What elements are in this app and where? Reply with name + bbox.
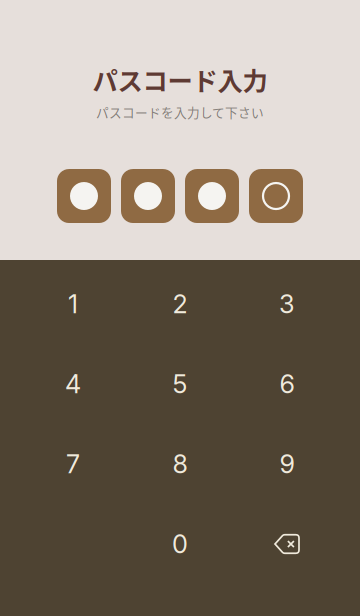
button[interactable]: 3 bbox=[233, 264, 340, 344]
button[interactable]: 8 bbox=[126, 424, 233, 504]
staticText: 0 bbox=[172, 529, 188, 559]
button[interactable]: 2 bbox=[126, 264, 233, 344]
staticText: 2 bbox=[172, 289, 187, 319]
button[interactable]: 7 bbox=[19, 424, 126, 504]
button[interactable]: 5 bbox=[126, 344, 233, 424]
staticText: 8 bbox=[172, 449, 187, 479]
button[interactable]: 6 bbox=[233, 344, 340, 424]
staticText: 9 bbox=[279, 449, 294, 479]
staticText: 5 bbox=[172, 369, 187, 399]
button[interactable]: 1 bbox=[19, 264, 126, 344]
staticText: 6 bbox=[279, 369, 294, 399]
staticText: 7 bbox=[66, 449, 80, 479]
button[interactable]: Delete bbox=[233, 504, 340, 584]
staticText: 3 bbox=[279, 289, 295, 319]
staticText: パスコードを入力して下さい bbox=[96, 103, 264, 121]
staticText: パスコード入力 bbox=[92, 61, 267, 98]
button[interactable]: 4 bbox=[19, 344, 126, 424]
button[interactable]: 9 bbox=[233, 424, 340, 504]
button[interactable]: 0 bbox=[126, 504, 233, 584]
staticText: 4 bbox=[65, 369, 81, 399]
staticText: 1 bbox=[68, 289, 78, 319]
